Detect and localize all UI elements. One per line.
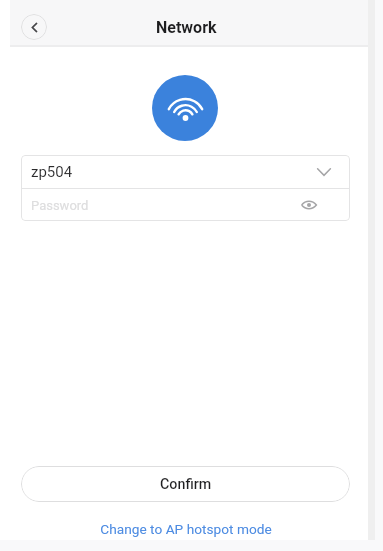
staticText: zp504	[31, 163, 73, 181]
button[interactable]: Confirm	[21, 466, 350, 502]
staticText: Password	[31, 198, 89, 213]
staticText: Confirm	[160, 476, 212, 493]
button[interactable]: Change to AP hotspot mode	[21, 518, 350, 540]
button[interactable]: Password	[21, 189, 350, 221]
staticText: Change to AP hotspot mode	[100, 521, 272, 537]
staticText: Network	[156, 18, 217, 37]
button[interactable]: Back	[21, 14, 47, 40]
button[interactable]: zp504	[21, 155, 350, 188]
button[interactable]: Show password	[299, 195, 319, 215]
